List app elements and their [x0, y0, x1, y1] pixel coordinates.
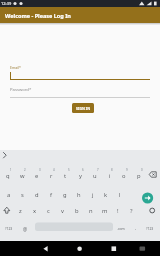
staticText: f	[50, 191, 52, 199]
staticText: x	[33, 207, 37, 215]
staticText: ?	[130, 207, 133, 215]
button[interactable]: w	[15, 169, 30, 182]
staticText: m	[102, 207, 108, 215]
button[interactable]	[10, 58, 150, 81]
staticText: o	[122, 172, 126, 180]
button[interactable]	[38, 241, 56, 256]
button[interactable]: n	[83, 204, 98, 217]
button[interactable]: v	[55, 204, 70, 217]
staticText: v	[61, 207, 64, 215]
button[interactable]: ?123	[141, 222, 158, 235]
staticText: h	[77, 191, 81, 199]
staticText: l	[119, 191, 121, 199]
button[interactable]: !	[110, 204, 125, 217]
staticText: SIGN IN	[76, 106, 91, 111]
staticText: .com	[117, 226, 125, 231]
staticText: e	[35, 172, 39, 180]
button[interactable]: g	[57, 188, 72, 201]
button[interactable]	[71, 241, 89, 256]
staticText: 9	[126, 168, 128, 172]
staticText: q	[6, 172, 10, 180]
staticText: c	[47, 207, 50, 215]
button[interactable]	[103, 241, 121, 256]
staticText: i	[109, 172, 111, 180]
staticText: 0	[141, 168, 143, 172]
button[interactable]: f	[43, 188, 58, 201]
button[interactable]: SIGN IN	[72, 103, 94, 113]
staticText: w	[20, 172, 25, 180]
button[interactable]: q	[0, 169, 15, 182]
staticText: r	[50, 172, 53, 180]
button[interactable]: a	[1, 188, 16, 201]
button[interactable]: c	[41, 204, 56, 217]
button[interactable]: @	[19, 222, 31, 235]
staticText: p	[137, 172, 141, 180]
button[interactable]: e	[29, 169, 44, 182]
staticText: 6	[82, 168, 84, 172]
button[interactable]: s	[15, 188, 30, 201]
button[interactable]: m	[97, 204, 112, 217]
staticText: Welcome - Please Log In	[5, 12, 71, 19]
button[interactable]: y	[73, 169, 88, 182]
button[interactable]: d	[29, 188, 44, 201]
staticText: j	[92, 191, 94, 199]
button[interactable]: .	[131, 221, 141, 234]
staticText: 8	[111, 168, 113, 172]
button[interactable]	[35, 223, 113, 232]
staticText: ?123	[5, 226, 13, 231]
staticText: ?123	[146, 226, 154, 231]
staticText: d	[35, 191, 39, 199]
staticText: !	[117, 207, 119, 215]
button[interactable]: j	[85, 188, 100, 201]
staticText: 7	[97, 168, 99, 172]
button[interactable]: x	[27, 204, 42, 217]
staticText: k	[104, 191, 108, 199]
staticText: 12:39	[1, 1, 12, 6]
button[interactable]: u	[87, 169, 102, 182]
staticText: y	[79, 172, 82, 180]
staticText: 1	[10, 168, 12, 172]
button[interactable]: l	[112, 188, 127, 201]
staticText: Email*	[10, 65, 21, 70]
staticText: t	[64, 172, 67, 180]
staticText: s	[21, 191, 24, 199]
staticText: 3	[39, 168, 41, 172]
staticText: 2	[24, 168, 26, 172]
button[interactable]: .com	[112, 222, 130, 235]
staticText: b	[75, 207, 79, 215]
button[interactable]: o	[116, 169, 131, 182]
staticText: n	[89, 207, 93, 215]
staticText: 4	[53, 168, 55, 172]
button[interactable]: t	[58, 169, 73, 182]
button[interactable]: r	[44, 169, 59, 182]
staticText: u	[93, 172, 97, 180]
button[interactable]	[10, 84, 150, 98]
button[interactable]: p	[131, 169, 146, 182]
staticText: z	[19, 207, 22, 215]
button[interactable]: ?123	[1, 222, 17, 235]
staticText: 5	[68, 168, 70, 172]
staticText: @	[23, 226, 28, 232]
button[interactable]: ?	[124, 204, 139, 217]
button[interactable]: i	[102, 169, 117, 182]
button[interactable]: Welcome - Please Log In	[0, 7, 160, 23]
button[interactable]: z	[13, 204, 28, 217]
staticText: g	[63, 191, 67, 199]
staticText: .	[135, 225, 137, 231]
button[interactable]: k	[98, 188, 113, 201]
staticText: Password*	[10, 87, 32, 93]
button[interactable]: b	[69, 204, 84, 217]
button[interactable]: h	[71, 188, 86, 201]
staticText: a	[7, 191, 11, 199]
